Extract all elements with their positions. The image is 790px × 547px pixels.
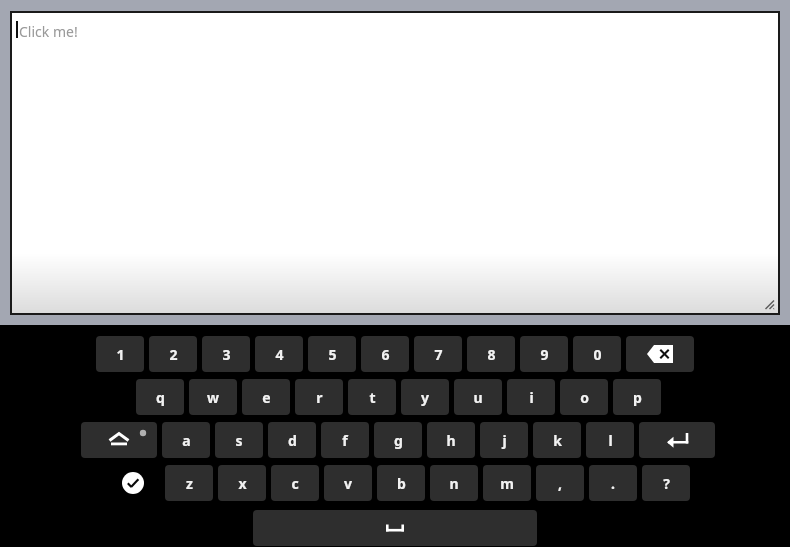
- button[interactable]: v: [324, 465, 372, 501]
- staticText: d: [288, 431, 297, 450]
- staticText: z: [186, 474, 193, 493]
- staticText: v: [344, 474, 352, 493]
- staticText: n: [449, 474, 459, 493]
- button[interactable]: k: [533, 422, 581, 458]
- staticText: 3: [222, 345, 231, 364]
- staticText: u: [473, 388, 483, 407]
- button[interactable]: g: [374, 422, 422, 458]
- button[interactable]: p: [613, 379, 661, 415]
- button[interactable]: i: [507, 379, 555, 415]
- button[interactable]: s: [215, 422, 263, 458]
- staticText: a: [182, 431, 191, 450]
- button[interactable]: 9: [520, 336, 568, 372]
- button[interactable]: z: [165, 465, 213, 501]
- button[interactable]: Click me!: [12, 13, 778, 313]
- staticText: ,: [558, 474, 562, 493]
- button[interactable]: u: [454, 379, 502, 415]
- staticText: x: [238, 474, 247, 493]
- button[interactable]: 0: [573, 336, 621, 372]
- staticText: g: [394, 431, 403, 450]
- staticText: c: [291, 474, 299, 493]
- button[interactable]: Shift: [81, 422, 157, 458]
- staticText: j: [502, 431, 507, 450]
- button[interactable]: 2: [149, 336, 197, 372]
- button[interactable]: d: [268, 422, 316, 458]
- staticText: p: [633, 388, 642, 407]
- button[interactable]: Backspace: [626, 336, 694, 372]
- button[interactable]: 5: [308, 336, 356, 372]
- button[interactable]: w: [189, 379, 237, 415]
- staticText: s: [235, 431, 243, 450]
- staticText: Click me!: [19, 22, 78, 41]
- staticText: 5: [328, 345, 337, 364]
- button[interactable]: 6: [361, 336, 409, 372]
- staticText: .: [611, 474, 615, 493]
- button[interactable]: ,: [536, 465, 584, 501]
- staticText: f: [342, 431, 348, 450]
- button[interactable]: 1: [96, 336, 144, 372]
- button[interactable]: c: [271, 465, 319, 501]
- staticText: l: [608, 431, 613, 450]
- staticText: 0: [593, 345, 602, 364]
- staticText: ?: [663, 474, 670, 493]
- staticText: t: [369, 388, 376, 407]
- staticText: 2: [169, 345, 178, 364]
- button[interactable]: n: [430, 465, 478, 501]
- staticText: i: [529, 388, 534, 407]
- staticText: 9: [540, 345, 549, 364]
- button[interactable]: f: [321, 422, 369, 458]
- staticText: h: [446, 431, 456, 450]
- staticText: y: [421, 388, 429, 407]
- button[interactable]: ?: [642, 465, 690, 501]
- button[interactable]: j: [480, 422, 528, 458]
- button[interactable]: h: [427, 422, 475, 458]
- button[interactable]: x: [218, 465, 266, 501]
- staticText: w: [207, 388, 219, 407]
- button[interactable]: 3: [202, 336, 250, 372]
- button[interactable]: b: [377, 465, 425, 501]
- button[interactable]: m: [483, 465, 531, 501]
- staticText: 6: [381, 345, 390, 364]
- button[interactable]: l: [586, 422, 634, 458]
- staticText: 1: [116, 345, 125, 364]
- button[interactable]: Enter: [639, 422, 715, 458]
- staticText: e: [262, 388, 271, 407]
- button[interactable]: r: [295, 379, 343, 415]
- button[interactable]: 7: [414, 336, 462, 372]
- button[interactable]: 8: [467, 336, 515, 372]
- button[interactable]: t: [348, 379, 396, 415]
- button[interactable]: 4: [255, 336, 303, 372]
- button[interactable]: q: [136, 379, 184, 415]
- button[interactable]: .: [589, 465, 637, 501]
- button[interactable]: Done: [111, 465, 155, 501]
- staticText: q: [156, 388, 165, 407]
- button[interactable]: Space: [253, 510, 537, 546]
- staticText: 8: [487, 345, 496, 364]
- staticText: 7: [434, 345, 443, 364]
- button[interactable]: o: [560, 379, 608, 415]
- button[interactable]: a: [162, 422, 210, 458]
- button[interactable]: y: [401, 379, 449, 415]
- staticText: r: [316, 388, 323, 407]
- staticText: b: [397, 474, 406, 493]
- staticText: k: [553, 431, 562, 450]
- staticText: m: [500, 474, 514, 493]
- staticText: 4: [275, 345, 284, 364]
- button[interactable]: e: [242, 379, 290, 415]
- staticText: o: [580, 388, 589, 407]
